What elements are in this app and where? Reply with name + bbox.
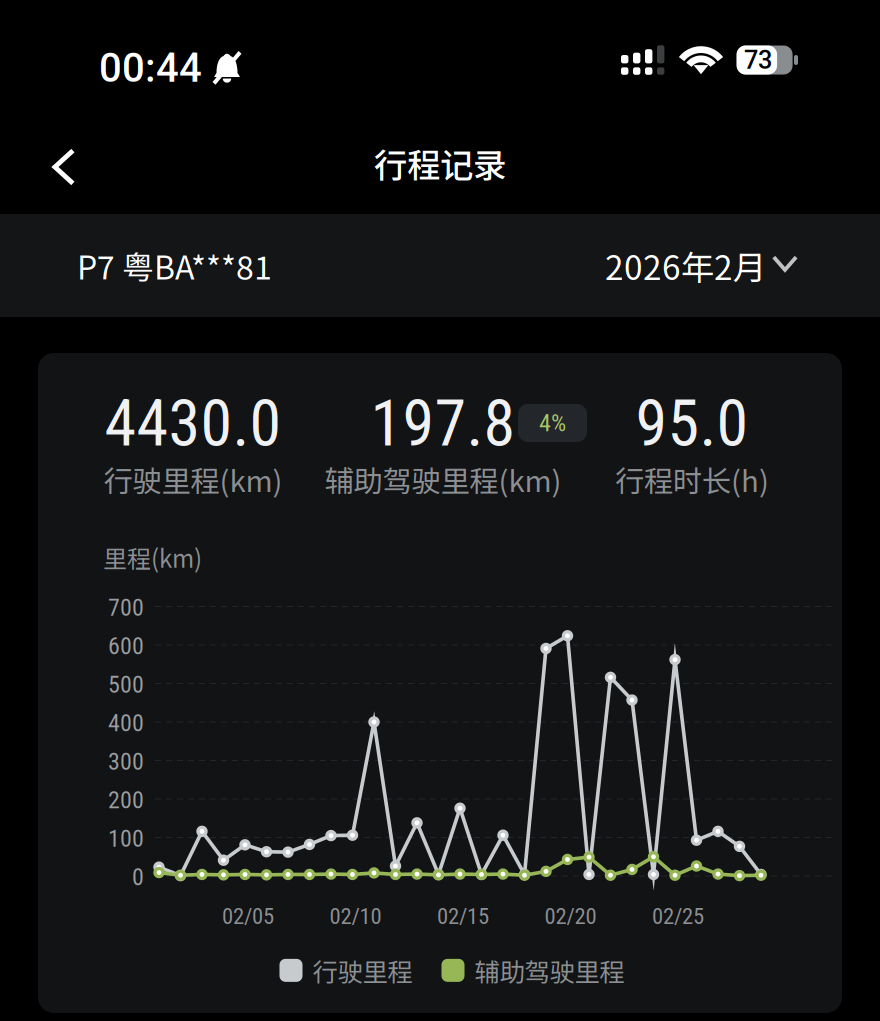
staticText: 里程(km) — [103, 540, 202, 575]
staticText: 0 — [132, 863, 144, 891]
staticText: 4430.0 — [104, 386, 281, 461]
button[interactable]: 2026年2月 — [605, 223, 802, 308]
staticText: 700 — [108, 593, 144, 622]
staticText: 行程记录 — [374, 139, 506, 187]
staticText: 4% — [539, 409, 566, 437]
staticText: 02/20 — [544, 903, 596, 930]
staticText: 辅助驾驶里程(km) — [324, 458, 561, 500]
staticText: 200 — [108, 786, 144, 814]
staticText: 95.0 — [635, 386, 748, 461]
staticText: P7 粤BA***81 — [77, 242, 272, 289]
staticText: 600 — [108, 632, 144, 660]
staticText: 100 — [108, 824, 144, 853]
staticText: 400 — [108, 709, 144, 737]
staticText: 2026年2月 — [605, 241, 766, 290]
staticText: 02/10 — [329, 903, 381, 930]
staticText: 500 — [108, 670, 144, 699]
staticText: 辅助驾驶里程 — [474, 952, 624, 989]
staticText: 02/05 — [222, 903, 274, 930]
staticText: 00:44 — [99, 45, 202, 91]
staticText: 行驶里程(km) — [103, 458, 282, 500]
staticText: 197.8 — [370, 386, 515, 461]
staticText: 02/25 — [652, 903, 704, 930]
button[interactable]: 返回 — [22, 126, 94, 200]
staticText: 02/15 — [437, 903, 489, 930]
staticText: 300 — [108, 747, 144, 776]
staticText: 73 — [744, 45, 772, 75]
staticText: 行程时长(h) — [615, 458, 769, 500]
staticText: 行驶里程 — [312, 952, 412, 989]
